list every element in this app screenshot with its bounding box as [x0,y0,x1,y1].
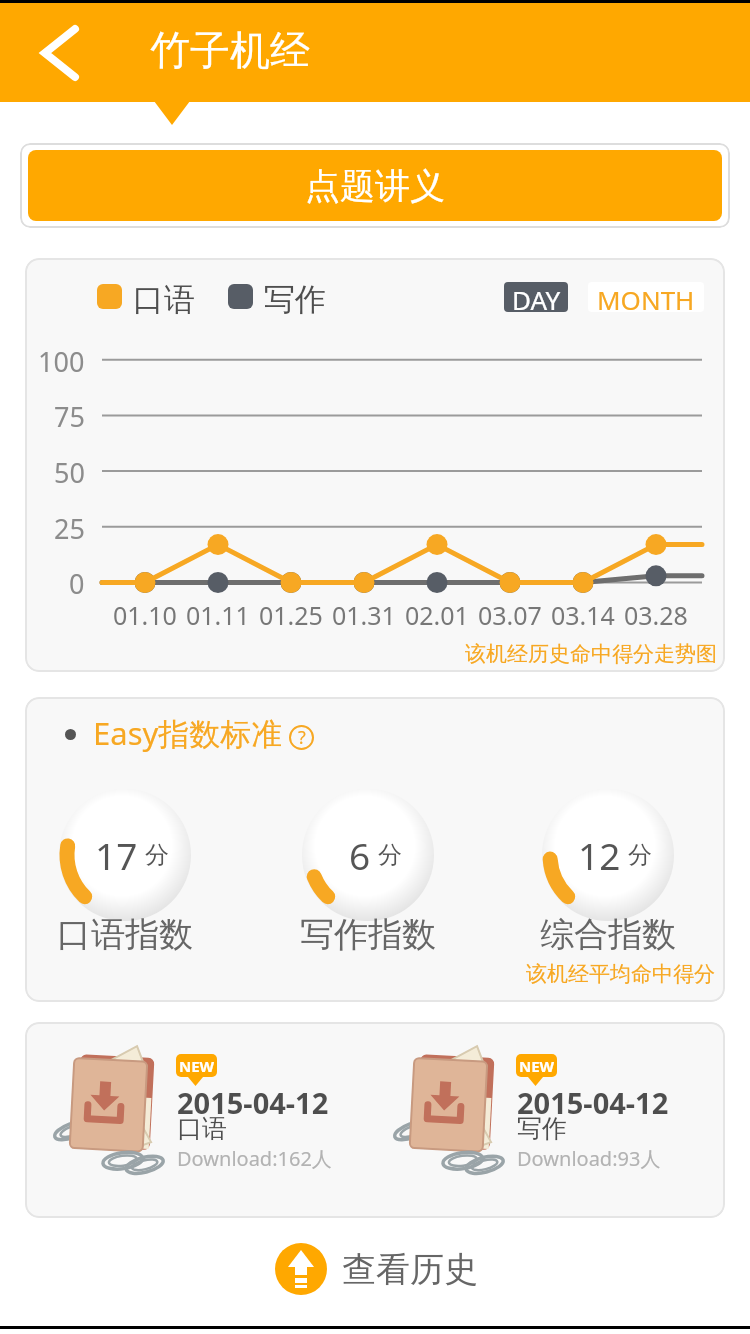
button[interactable]: 点题讲义 [28,150,722,221]
button[interactable]: MONTH [588,282,704,312]
staticText: 100 [38,343,85,377]
button[interactable]: NEW [390,1022,710,1218]
staticText: 17 [95,830,138,880]
staticText: Download:93人 [517,1145,661,1172]
staticText: 分 [628,840,652,870]
staticText: DAY [512,282,561,312]
staticText: 口语 [133,280,195,319]
staticText: 0 [69,565,85,599]
button[interactable]: 查看历史 [275,1243,478,1295]
staticText: 查看历史 [342,1248,478,1291]
staticText: 2015-04-12 [517,1083,669,1122]
staticText: 综合指数 [540,913,676,956]
staticText: MONTH [597,282,695,312]
staticText: 01.25 [259,598,323,630]
staticText: 03.07 [478,598,542,630]
staticText: 01.10 [113,598,177,630]
staticText: 01.11 [186,598,250,630]
staticText: 12 [578,830,621,880]
staticText: 写作 [264,280,326,319]
staticText: 03.28 [624,598,688,630]
button[interactable]: DAY [504,282,568,312]
staticText: Download:162人 [177,1145,332,1172]
staticText: 75 [54,398,85,432]
staticText: Easy指数标准 [93,712,283,754]
staticText: NEW [519,1056,555,1076]
button[interactable]: NEW [50,1022,370,1218]
staticText: 02.01 [405,598,469,630]
staticText: 50 [54,454,85,488]
staticText: 03.14 [551,598,615,630]
staticText: 01.31 [332,598,396,630]
staticText: 2015-04-12 [177,1083,329,1122]
staticText: 写作指数 [300,913,436,956]
staticText: ? [298,725,306,750]
staticText: 分 [145,840,169,870]
staticText: 6 [349,830,371,880]
staticText: 点题讲义 [305,164,445,208]
staticText: 该机经历史命中得分走势图 [465,641,717,667]
staticText: 该机经平均命中得分 [526,961,715,987]
staticText: 口语指数 [57,913,193,956]
staticText: 口语 [177,1113,227,1144]
staticText: 25 [54,510,85,544]
staticText: 写作 [517,1113,567,1144]
staticText: 分 [378,840,402,870]
staticText: NEW [179,1056,215,1076]
button[interactable]: ? [289,725,314,750]
button[interactable] [20,11,100,95]
staticText: 竹子机经 [150,25,310,75]
